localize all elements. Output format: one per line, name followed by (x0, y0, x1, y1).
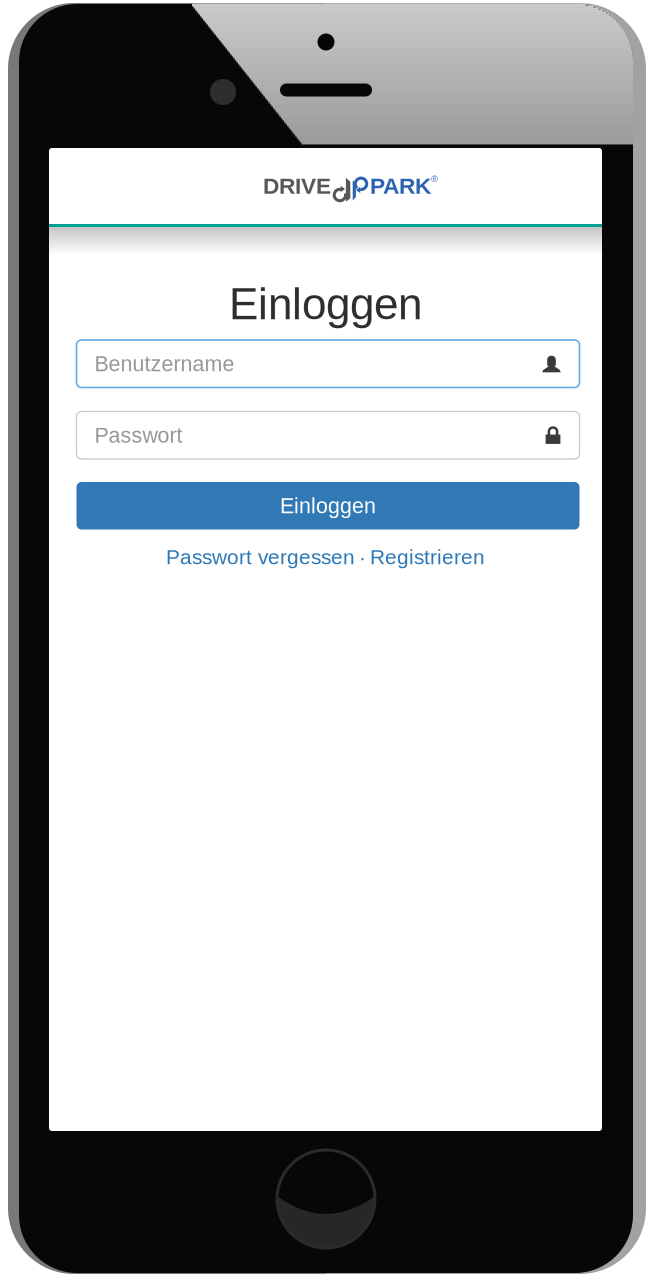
staticText: ® (431, 174, 438, 184)
button[interactable]: Einloggen (76, 482, 579, 529)
staticText: · (355, 545, 370, 569)
staticText: PARK (370, 173, 431, 199)
staticText: Benutzername (94, 352, 234, 376)
staticText: Registrieren (370, 545, 485, 569)
button[interactable]: Passwort vergessen (166, 545, 355, 569)
staticText: Passwort (94, 423, 182, 447)
staticText: Passwort vergessen (166, 545, 355, 569)
staticText: Einloggen (229, 279, 422, 329)
staticText: Einloggen (280, 494, 376, 518)
button[interactable]: Registrieren (370, 545, 485, 569)
staticText: DRIVE (263, 173, 331, 199)
